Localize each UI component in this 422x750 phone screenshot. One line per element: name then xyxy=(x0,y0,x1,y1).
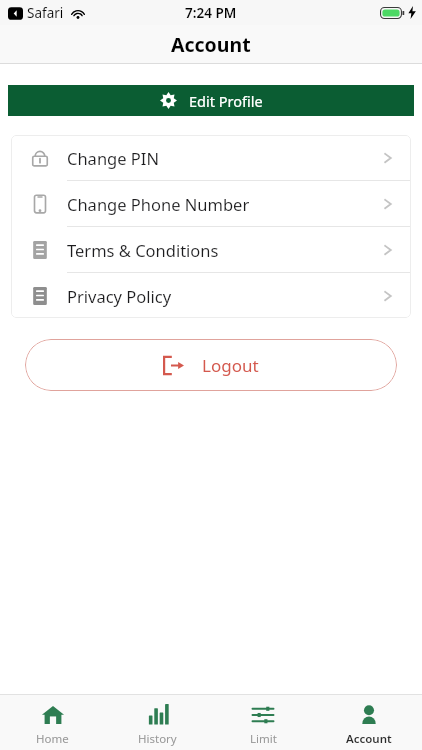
staticText: Account xyxy=(171,31,251,58)
staticText: Change PIN xyxy=(67,147,159,169)
staticText: History xyxy=(138,731,177,747)
button[interactable]: History xyxy=(105,695,210,750)
button[interactable]: Terms & Conditions xyxy=(11,227,411,273)
staticText: Edit Profile xyxy=(189,91,263,111)
button[interactable]: Privacy Policy xyxy=(11,273,411,318)
button[interactable]: Change PIN xyxy=(11,135,411,181)
button[interactable]: Limit xyxy=(210,695,316,750)
button[interactable]: Change Phone Number xyxy=(11,181,411,227)
staticText: Home xyxy=(36,731,69,747)
staticText: Safari xyxy=(27,4,64,22)
other: History xyxy=(146,703,170,727)
button[interactable]: Edit Profile xyxy=(8,85,414,116)
button[interactable]: Logout xyxy=(25,339,397,391)
staticText: Limit xyxy=(250,731,277,747)
other: Limit xyxy=(251,703,275,727)
button[interactable]: Account xyxy=(316,695,422,750)
other: Account xyxy=(357,703,381,727)
other: Home xyxy=(41,703,65,727)
staticText: Privacy Policy xyxy=(67,285,172,307)
staticText: Logout xyxy=(202,354,259,377)
button[interactable]: Home xyxy=(0,695,105,750)
staticText: 7:24 PM xyxy=(185,4,237,22)
staticText: Account xyxy=(346,731,392,747)
staticText: Terms & Conditions xyxy=(67,239,219,261)
staticText: Change Phone Number xyxy=(67,193,250,215)
